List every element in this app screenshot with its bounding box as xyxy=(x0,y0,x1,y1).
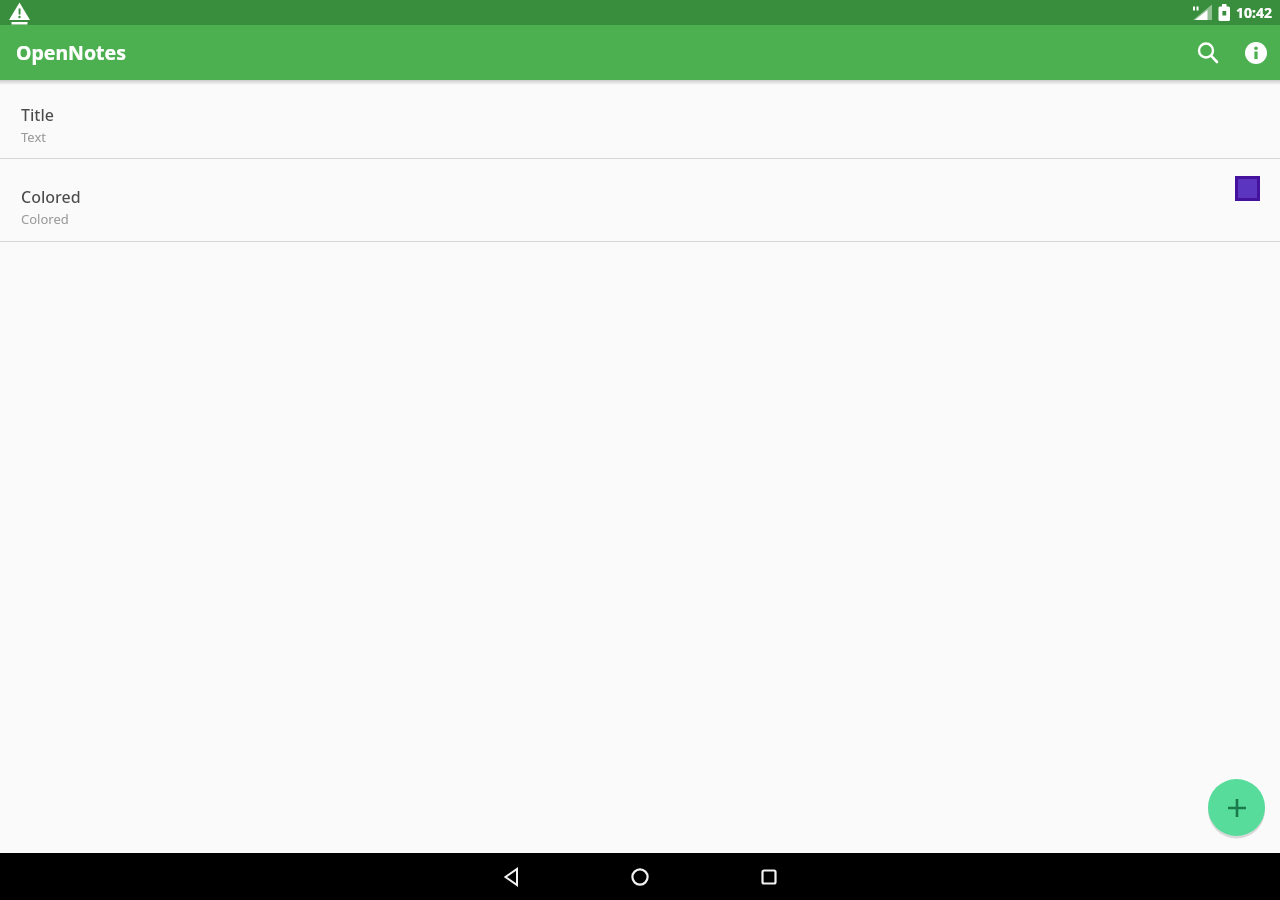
button[interactable]: Title xyxy=(0,80,1280,158)
staticText: 10:42 xyxy=(1236,3,1272,22)
button[interactable] xyxy=(616,853,664,900)
button[interactable] xyxy=(745,853,793,900)
staticText: Colored xyxy=(21,210,69,228)
button[interactable] xyxy=(1232,25,1280,80)
button[interactable]: Colored xyxy=(0,159,1280,241)
staticText: Title xyxy=(21,104,54,126)
button[interactable] xyxy=(488,853,536,900)
staticText: OpenNotes xyxy=(16,39,126,66)
staticText: Colored xyxy=(21,186,81,208)
button[interactable] xyxy=(1208,779,1265,836)
staticText: Text xyxy=(21,128,46,146)
button[interactable] xyxy=(1184,25,1232,80)
